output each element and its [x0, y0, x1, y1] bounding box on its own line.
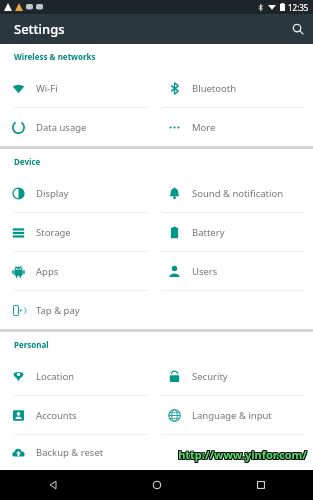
staticText: Security — [192, 370, 228, 383]
staticText: Tap & pay — [36, 304, 80, 317]
staticText: http://www.yinfor.com/ — [177, 446, 306, 461]
staticText: http://www.yinfor.com/ — [179, 448, 308, 463]
button[interactable]: Location — [0, 357, 156, 395]
staticText: 12:35 — [288, 2, 309, 13]
button[interactable]: Bluetooth — [156, 69, 313, 107]
button[interactable]: Home — [105, 470, 209, 500]
staticText: http://www.yinfor.com/ — [178, 447, 307, 462]
staticText: http://www.yinfor.com/ — [179, 446, 308, 461]
staticText: http://www.yinfor.com/ — [179, 447, 308, 462]
staticText: Language & input — [192, 409, 272, 422]
staticText: More — [192, 121, 216, 134]
button[interactable]: Data usage — [0, 108, 156, 146]
staticText: http://www.yinfor.com/ — [178, 448, 307, 463]
staticText: Wi-Fi — [36, 82, 58, 95]
staticText: http://www.yinfor.com/ — [177, 447, 306, 462]
staticText: http://www.yinfor.com/ — [177, 448, 306, 463]
staticText: Users — [192, 265, 218, 278]
staticText: http://www.yinfor.com/ — [178, 446, 307, 461]
button[interactable]: Recent apps — [209, 470, 313, 500]
button[interactable]: Apps — [0, 252, 156, 290]
button[interactable]: Language & input — [156, 396, 313, 434]
staticText: Wireless & networks — [14, 51, 96, 62]
button[interactable]: Display — [0, 174, 156, 212]
staticText: Device — [14, 156, 41, 167]
button[interactable]: Storage — [0, 213, 156, 251]
staticText: Bluetooth — [192, 82, 237, 95]
staticText: Apps — [36, 265, 59, 278]
staticText: Data usage — [36, 121, 87, 134]
staticText: Display — [36, 187, 69, 200]
button[interactable]: Search — [283, 14, 313, 44]
staticText: Personal — [14, 339, 49, 350]
staticText: Location — [36, 370, 75, 383]
button[interactable]: Accounts — [0, 396, 156, 434]
button[interactable]: Battery — [156, 213, 313, 251]
button[interactable]: Back — [0, 470, 105, 500]
button[interactable]: Wi-Fi — [0, 69, 156, 107]
staticText: Storage — [36, 226, 71, 239]
staticText: Accounts — [36, 409, 77, 422]
button[interactable]: Backup & reset — [0, 435, 156, 470]
button[interactable]: More — [156, 108, 313, 146]
staticText: Battery — [192, 226, 225, 239]
staticText: Settings — [14, 20, 65, 38]
staticText: Sound & notification — [192, 187, 284, 200]
staticText: Backup & reset — [36, 446, 104, 459]
button[interactable]: Sound & notification — [156, 174, 313, 212]
button[interactable]: Users — [156, 252, 313, 290]
button[interactable]: Tap & pay — [0, 291, 156, 329]
button[interactable]: Security — [156, 357, 313, 395]
